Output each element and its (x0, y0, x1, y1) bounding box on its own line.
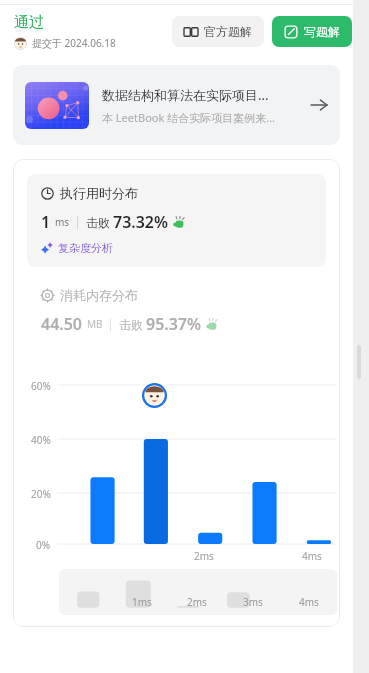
staticText: 执行用时分布 (60, 185, 138, 201)
staticText: 官方题解 (204, 24, 252, 39)
staticText: 击败 (86, 215, 110, 230)
staticText: 消耗内存分布 (60, 287, 138, 303)
staticText: MB (87, 317, 103, 331)
staticText: 20% (31, 487, 51, 501)
staticText: 44.50 (41, 313, 83, 335)
staticText: 1ms (132, 595, 152, 609)
staticText: 提交于 2024.06.18 (32, 36, 116, 50)
button[interactable]: 数据结构和算法在实际项目... (13, 65, 340, 145)
staticText: 40% (31, 433, 51, 447)
staticText: 写题解 (304, 24, 340, 39)
other: Book (184, 25, 198, 39)
staticText: 95.37% (146, 313, 202, 335)
button[interactable]: Write solution (272, 16, 352, 47)
staticText: 击败 (119, 317, 143, 332)
other: Open LeetBook (310, 96, 328, 114)
staticText: 3ms (243, 595, 263, 609)
button[interactable]: 执行用时分布 (27, 174, 326, 267)
staticText: 本 LeetBook 结合实际项目案例来... (102, 110, 276, 125)
staticText: 通过 (14, 13, 44, 32)
staticText: 0% (36, 538, 51, 552)
staticText: 73.32% (113, 211, 169, 233)
staticText: ms (55, 215, 70, 229)
staticText: 4ms (302, 549, 322, 563)
staticText: 4ms (299, 595, 319, 609)
button[interactable]: 1ms (59, 569, 337, 615)
button[interactable]: Book (172, 16, 264, 47)
staticText: 数据结构和算法在实际项目... (102, 86, 269, 104)
button[interactable]: 复杂度分析 (41, 241, 113, 255)
staticText: 复杂度分析 (58, 241, 113, 255)
staticText: 1 (41, 211, 51, 233)
staticText: 60% (31, 379, 51, 393)
staticText: 2ms (187, 595, 207, 609)
staticText: 2ms (194, 549, 214, 563)
other: Write solution (284, 25, 298, 39)
